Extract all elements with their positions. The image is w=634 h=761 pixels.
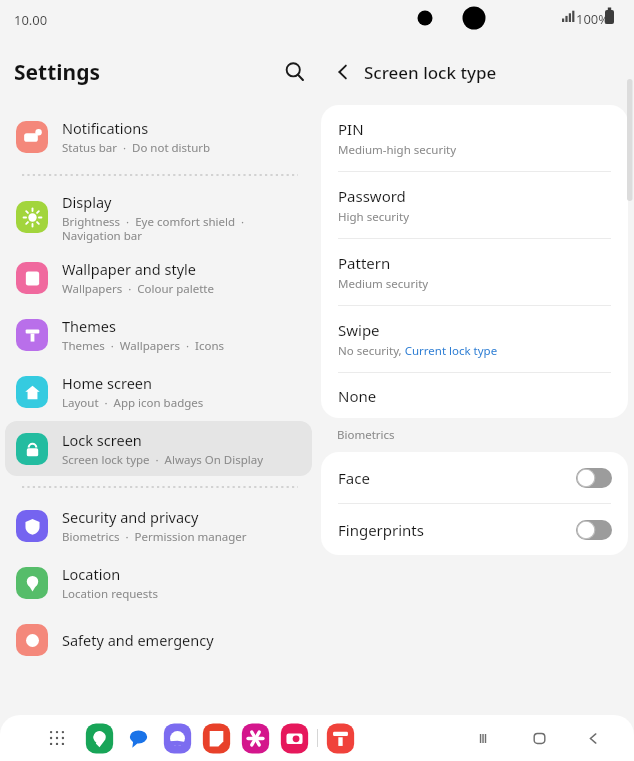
button[interactable]: back [566,716,620,760]
staticText: Themes [62,316,116,336]
button[interactable]: brushapp [324,722,357,755]
button[interactable]: None [321,373,628,418]
button[interactable]: camera [278,722,311,755]
staticText: Display [62,192,112,212]
staticText: Face [338,468,370,488]
button[interactable]: Security and privacy [5,498,312,553]
staticText: High security [338,209,410,225]
staticText: Pattern [338,253,391,273]
staticText: Biometrics · Permission manager [62,529,247,545]
button[interactable]: phone [83,722,116,755]
button[interactable]: Fingerprints [321,504,628,555]
button[interactable]: Search [273,50,317,94]
staticText: Medium-high security [338,142,457,158]
staticText: Fingerprints [338,520,424,540]
staticText: Layout · App icon badges [62,395,204,411]
staticText: Medium security [338,276,429,292]
button[interactable]: Pattern [321,239,628,305]
button[interactable]: Password [321,172,628,238]
staticText: Screen lock type · Always On Display [62,452,264,468]
staticText: Themes · Wallpapers · Icons [62,338,224,354]
staticText: Notifications [62,118,149,138]
button[interactable]: Swipe [321,306,628,372]
button[interactable]: notes [200,722,233,755]
button[interactable]: Fingerprints toggle [576,520,612,540]
button[interactable]: Themes [5,307,312,362]
staticText: Swipe [338,320,380,340]
staticText: Home screen [62,373,152,393]
staticText: PIN [338,119,364,139]
button[interactable]: internet [161,722,194,755]
staticText: 100% [576,10,610,28]
button[interactable]: msg [122,722,155,755]
button[interactable]: recents [458,716,512,760]
button[interactable]: Display [5,186,312,248]
button[interactable]: Apps [40,721,74,755]
button[interactable]: home [512,716,566,760]
staticText: Safety and emergency [62,630,214,650]
staticText: Wallpapers · Colour palette [62,281,214,297]
staticText: Wallpaper and style [62,259,196,279]
button[interactable]: Lock screen [5,421,312,476]
staticText: Location [62,564,121,584]
button[interactable]: Home screen [5,364,312,419]
button[interactable]: Face toggle [576,468,612,488]
staticText: Settings [14,58,101,87]
button[interactable]: Face [321,452,628,503]
button[interactable]: Wallpaper and style [5,250,312,305]
staticText: Security and privacy [62,507,199,527]
staticText: Password [338,186,406,206]
staticText: None [338,386,377,406]
staticText: Screen lock type [364,61,497,84]
button[interactable]: PIN [321,105,628,171]
staticText: Location requests [62,586,158,602]
button[interactable]: flower [239,722,272,755]
button[interactable]: Safety and emergency [5,612,312,667]
staticText: Status bar · Do not disturb [62,140,211,156]
staticText: Lock screen [62,430,142,450]
staticText: 10.00 [14,11,48,29]
button[interactable]: Back [325,54,361,90]
staticText: Biometrics [337,427,395,443]
staticText: Brightness · Eye comfort shield · Naviga… [62,214,245,243]
button[interactable]: Notifications [5,109,312,164]
staticText: No security, Current lock type [338,343,498,359]
button[interactable]: Location [5,555,312,610]
